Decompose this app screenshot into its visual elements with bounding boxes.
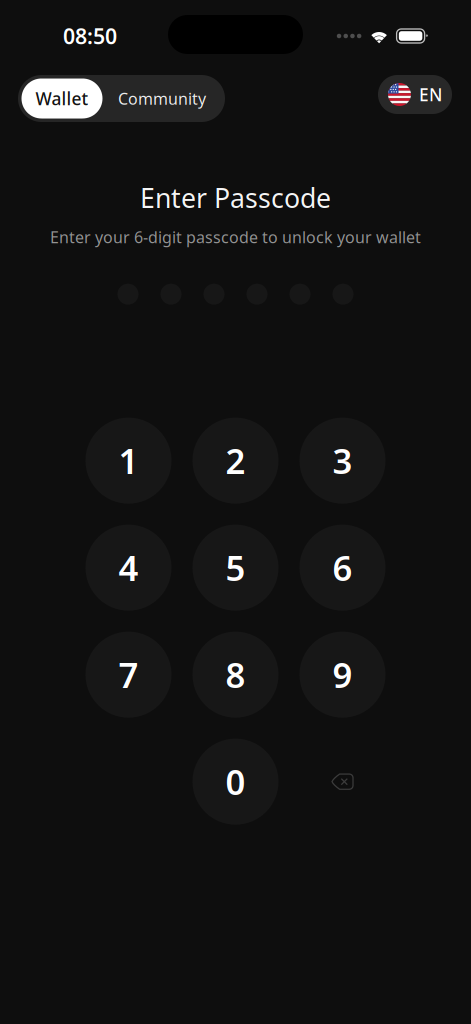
button[interactable]: Language: EN [378,75,452,114]
button[interactable]: 0 [192,739,278,825]
button[interactable]: Community [102,78,221,118]
button[interactable]: 9 [299,632,385,718]
staticText: Wallet [35,87,88,110]
button[interactable]: 7 [85,632,171,718]
staticText: 0 [225,759,245,805]
staticText: 7 [118,652,138,698]
button[interactable]: 4 [85,525,171,611]
staticText: 8 [225,652,245,698]
staticText: 3 [332,438,352,484]
staticText: 1 [118,438,138,484]
button[interactable]: 3 [299,418,385,504]
staticText: 5 [225,545,245,591]
button[interactable]: Delete [299,739,385,825]
staticText: 08:50 [63,22,117,50]
staticText: 4 [118,545,138,591]
staticText: 9 [332,652,352,698]
staticText: 6 [332,545,352,591]
button[interactable]: 6 [299,525,385,611]
button[interactable]: 5 [192,525,278,611]
staticText: Enter Passcode [140,180,331,215]
staticText: Enter your 6-digit passcode to unlock yo… [50,226,421,248]
staticText: Community [118,88,206,109]
button[interactable]: 2 [192,418,278,504]
staticText: 2 [225,438,245,484]
staticText: EN [419,83,442,106]
button[interactable]: 1 [85,418,171,504]
button[interactable]: Wallet [21,78,102,118]
button[interactable]: 8 [192,632,278,718]
